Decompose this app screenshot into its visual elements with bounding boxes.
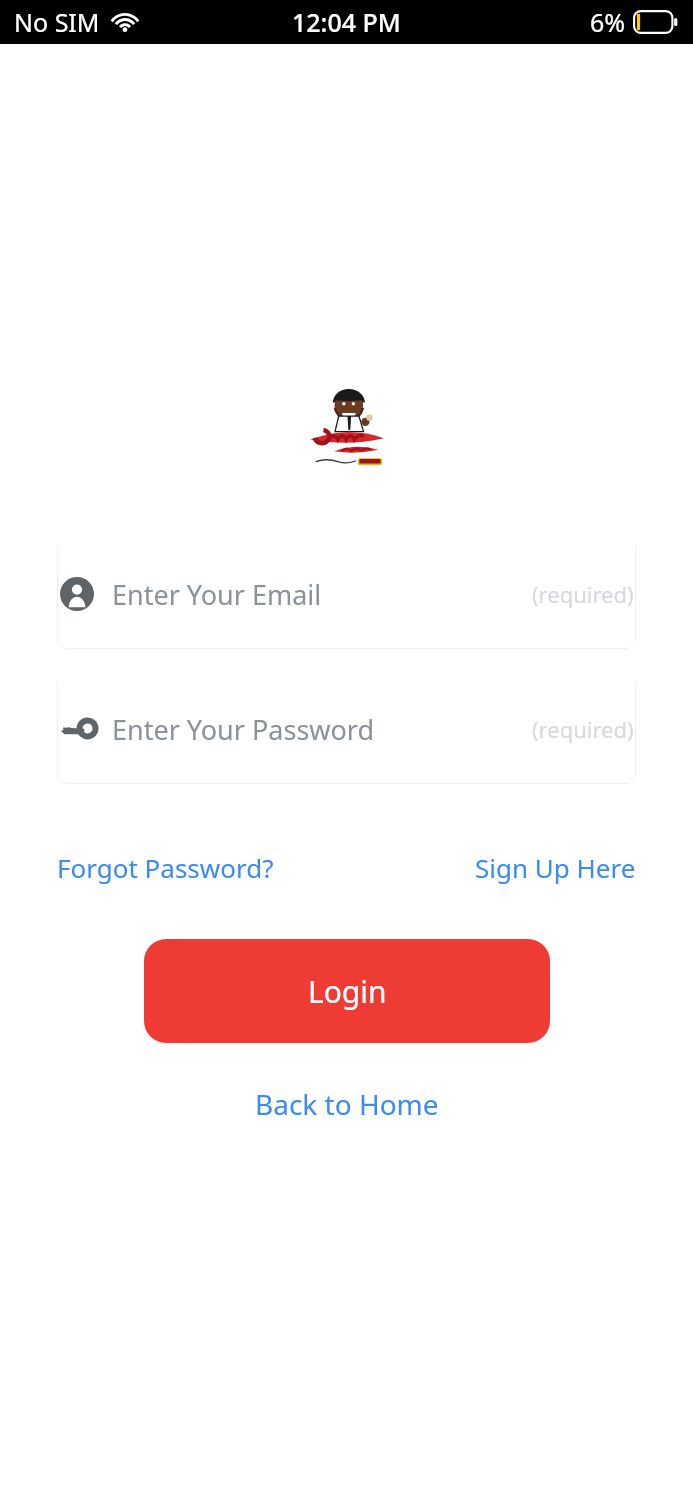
staticText: Login — [308, 971, 387, 1012]
staticText: No SIM — [14, 5, 100, 39]
button[interactable]: Sign Up Here — [475, 846, 636, 889]
staticText: (required) — [532, 579, 634, 609]
button[interactable]: Login — [144, 939, 550, 1043]
staticText: Sign Up Here — [475, 850, 636, 885]
other: Password — [59, 711, 95, 747]
staticText: Forgot Password? — [57, 850, 274, 885]
button[interactable]: Back to Home — [245, 1079, 449, 1129]
staticText: Back to Home — [255, 1085, 439, 1123]
button[interactable]: Password — [57, 674, 636, 784]
staticText: Enter Your Password — [112, 711, 375, 748]
button[interactable]: Email — [57, 539, 636, 649]
button[interactable]: Forgot Password? — [57, 846, 274, 889]
staticText: (required) — [532, 714, 634, 744]
other: Email — [59, 576, 95, 612]
staticText: 12:04 PM — [292, 5, 401, 39]
staticText: Enter Your Email — [112, 576, 322, 613]
staticText: 6% — [590, 5, 626, 39]
